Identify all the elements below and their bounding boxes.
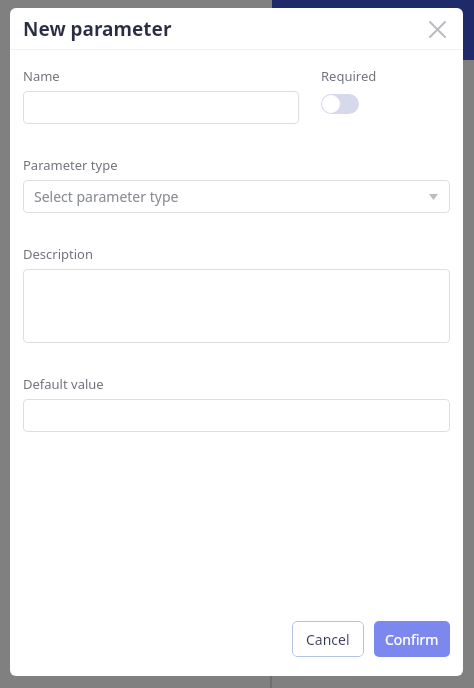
button[interactable]: Confirm	[374, 621, 450, 657]
button[interactable]	[23, 91, 299, 124]
button[interactable]: Cancel	[292, 621, 364, 657]
staticText: Parameter type	[23, 156, 118, 174]
button[interactable]: Required toggle	[321, 94, 359, 114]
staticText: Required	[321, 67, 377, 85]
staticText: New parameter	[23, 16, 172, 42]
button[interactable]	[23, 399, 450, 432]
staticText: Description	[23, 245, 93, 263]
staticText: Default value	[23, 375, 104, 393]
staticText: Cancel	[306, 630, 350, 649]
staticText: Name	[23, 67, 60, 85]
button[interactable]: Close	[424, 16, 450, 42]
button[interactable]: Select parameter type	[23, 180, 450, 213]
staticText: Confirm	[385, 630, 439, 649]
button[interactable]	[23, 269, 450, 343]
staticText: Select parameter type	[34, 187, 179, 206]
